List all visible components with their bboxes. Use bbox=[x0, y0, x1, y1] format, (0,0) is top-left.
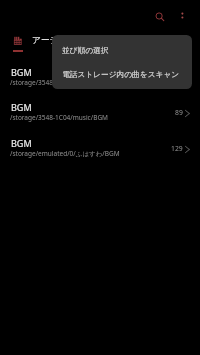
button[interactable]: Search bbox=[149, 6, 173, 30]
button[interactable]: 電話ストレージ内の曲をスキャン bbox=[52, 62, 192, 89]
button[interactable] bbox=[6, 30, 52, 54]
staticText: /storage/emulated/0/ふはすわ/BGM bbox=[10, 149, 120, 158]
staticText: /storage/3548-1C04/music/BGM bbox=[10, 78, 109, 87]
button[interactable]: 並び順の選択 bbox=[52, 35, 192, 62]
staticText: /storage/3548-1C04/music/BGM bbox=[10, 113, 109, 122]
staticText: 並び順の選択 bbox=[62, 46, 109, 56]
staticText: BGM bbox=[11, 137, 32, 149]
staticText: BGM bbox=[11, 101, 32, 113]
button[interactable]: BGM bbox=[0, 101, 200, 133]
staticText: 129 bbox=[171, 144, 183, 153]
button[interactable]: More options bbox=[172, 3, 194, 25]
staticText: アーティスト bbox=[32, 35, 86, 46]
staticText: BGM bbox=[11, 66, 32, 78]
staticText: 89 bbox=[175, 108, 183, 117]
button[interactable]: BGM bbox=[0, 66, 200, 98]
button[interactable]: BGM bbox=[0, 137, 200, 169]
staticText: 電話ストレージ内の曲をスキャン bbox=[62, 70, 180, 80]
